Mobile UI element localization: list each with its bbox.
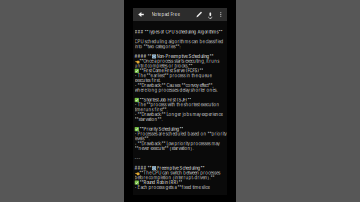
staticText: where long processes delay shorter ones. xyxy=(134,88,217,93)
button[interactable]: More options xyxy=(216,8,226,21)
staticText: until it completes or blocks.** xyxy=(134,63,192,69)
staticText: **starvation**. xyxy=(134,117,162,122)
staticText: into **two categories**: xyxy=(134,44,180,49)
button[interactable]: Back xyxy=(134,8,147,21)
button[interactable]: Voice note xyxy=(205,8,216,21)
staticText: **The CPU can switch between processes xyxy=(139,170,220,176)
staticText: levels**. xyxy=(134,136,149,141)
staticText: **Shortest Job First (SJF)** xyxy=(139,97,191,102)
staticText: #### ** xyxy=(134,54,151,59)
staticText: **never execute** (starvation). xyxy=(134,146,193,151)
staticText: Notepad Free xyxy=(151,12,180,17)
staticText: before completion (interrupt-driven).** xyxy=(134,175,214,180)
staticText: **Priority Scheduling** xyxy=(139,127,183,132)
staticText: - **Drawback:** Causes **convoy effect**… xyxy=(134,83,213,88)
staticText: - The **process with the shortest execut… xyxy=(134,102,219,107)
staticText: - **Drawback:** Low priority processes m… xyxy=(134,141,219,146)
staticText: **First Come First Serve (FCFS)** xyxy=(139,68,203,73)
staticText: Preemptive Scheduling** xyxy=(157,166,205,171)
staticText: ### **Types of CPU Scheduling Algorithms… xyxy=(134,29,222,34)
staticText: #### ** xyxy=(134,166,151,171)
staticText: **Once a process starts executing, it ru… xyxy=(139,59,219,64)
staticText: - **Drawback:** Longer jobs may experien… xyxy=(134,112,222,117)
staticText: executes first. xyxy=(134,78,160,83)
staticText: - Each process gets a **fixed time slice xyxy=(134,185,209,190)
button[interactable]: Edit note xyxy=(194,8,205,21)
staticText: Non-Preemptive Scheduling** xyxy=(157,54,214,59)
staticText: time runs first**. xyxy=(134,107,167,112)
staticText: - The **earliest** process in the queue xyxy=(134,73,211,78)
staticText: - Processes are scheduled based on **pri… xyxy=(134,131,226,137)
staticText: --- xyxy=(134,156,140,161)
staticText: **Round Robin (RR)** xyxy=(139,180,182,185)
staticText: CPU scheduling algorithms can be classif… xyxy=(134,39,223,44)
